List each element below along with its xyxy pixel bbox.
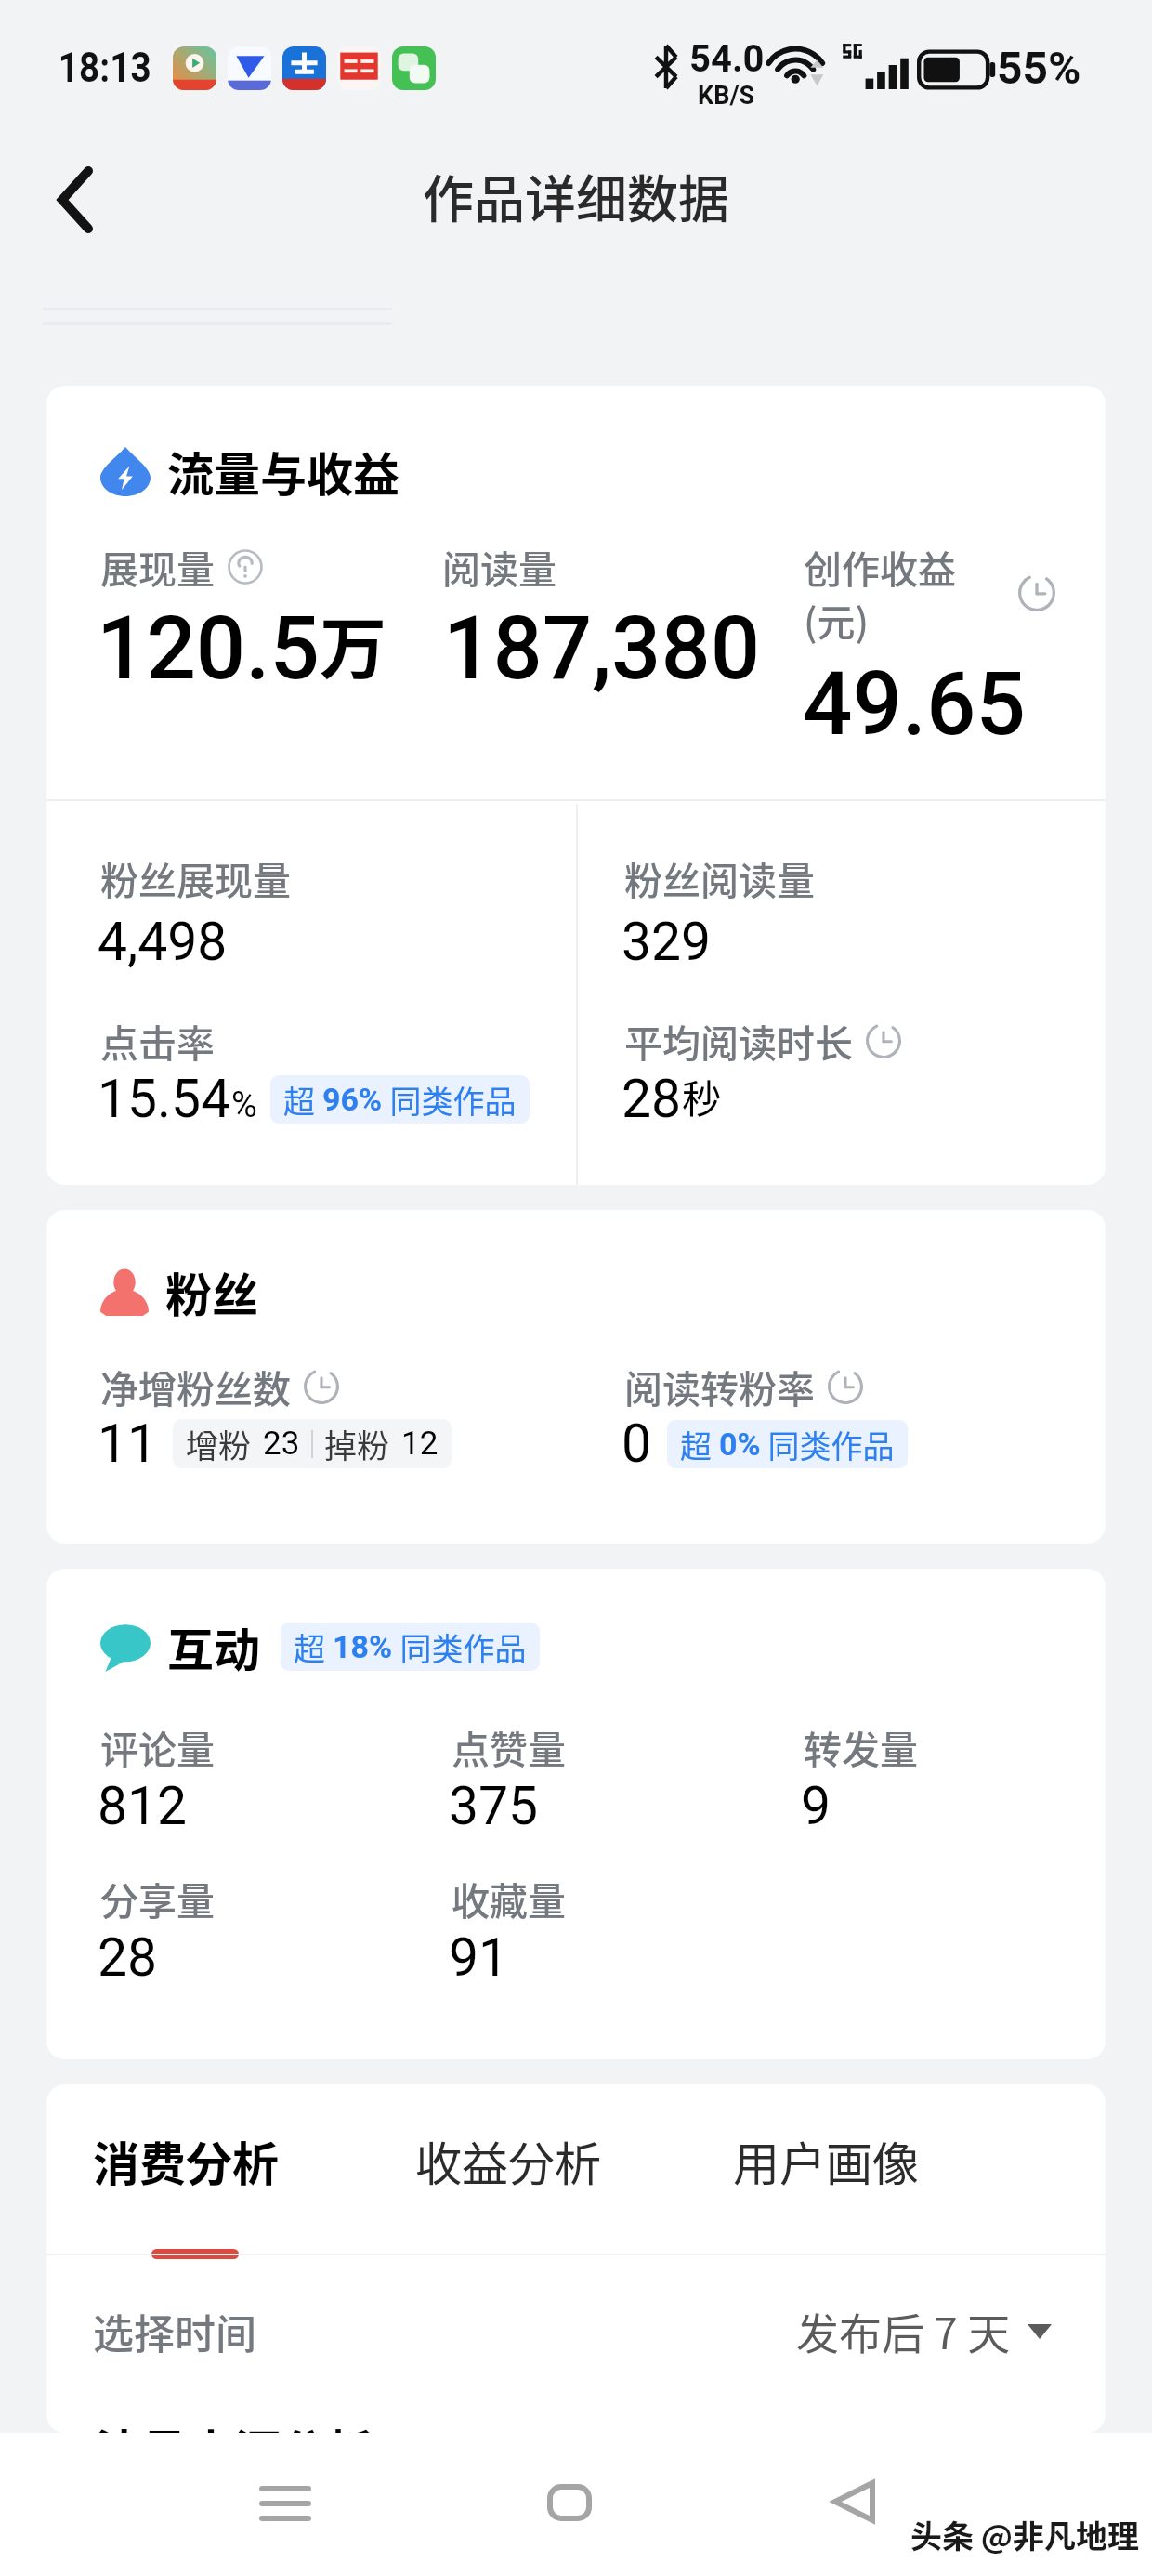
staticText: 12 xyxy=(401,1425,439,1463)
staticText: 23 xyxy=(263,1425,300,1463)
staticText: 分享量 xyxy=(100,1871,215,1925)
staticText: 粉丝阅读量 xyxy=(624,850,815,905)
staticText: 粉丝展现量 xyxy=(100,850,291,905)
staticText: % xyxy=(231,1084,257,1126)
staticText: 同类作品 xyxy=(761,1422,895,1467)
staticText: 28 xyxy=(622,1068,682,1130)
staticText: 用户画像 xyxy=(733,2127,919,2194)
button[interactable]: 消费分析 xyxy=(93,2127,279,2194)
staticText: 万 xyxy=(320,595,387,691)
button[interactable]: Recent apps xyxy=(234,2452,336,2555)
staticText: 增粉 xyxy=(186,1420,252,1467)
staticText: 头条 @非凡地理 xyxy=(910,2512,1139,2557)
staticText: 375 xyxy=(449,1775,539,1837)
staticText: 91 xyxy=(449,1926,509,1989)
staticText: 55% xyxy=(997,42,1081,94)
staticText: 0% xyxy=(719,1426,761,1463)
staticText: 展现量 xyxy=(100,539,215,594)
staticText: 18:13 xyxy=(58,44,152,92)
staticText: 掉粉 xyxy=(324,1420,390,1467)
staticText: 粉丝 xyxy=(165,1258,258,1325)
staticText: 0 xyxy=(622,1413,652,1475)
staticText: 812 xyxy=(98,1775,188,1837)
staticText: 54.0 xyxy=(689,37,765,81)
staticText: 超 xyxy=(283,1077,322,1123)
staticText: 收益分析 xyxy=(415,2127,601,2194)
staticText: 4,498 xyxy=(98,911,228,973)
staticText: 流量来源分析 xyxy=(95,2415,373,2433)
staticText: 发布后 7 天 xyxy=(796,2300,1011,2362)
button[interactable]: Back xyxy=(803,2451,905,2553)
button[interactable]: Back xyxy=(24,149,126,251)
staticText: 11 xyxy=(98,1413,158,1475)
staticText: 创作收益 (元) xyxy=(804,539,956,648)
button[interactable]: 收益分析 xyxy=(415,2127,601,2194)
staticText: 同类作品 xyxy=(383,1077,517,1123)
staticText: KB/S xyxy=(698,81,755,111)
staticText: 9 xyxy=(801,1775,831,1837)
button[interactable]: Home xyxy=(518,2451,621,2554)
staticText: 329 xyxy=(622,911,712,973)
staticText: 28 xyxy=(98,1926,158,1989)
staticText: 同类作品 xyxy=(393,1624,527,1670)
staticText: 点击率 xyxy=(100,1013,215,1068)
staticText: 18% xyxy=(333,1628,393,1665)
staticText: 点赞量 xyxy=(452,1719,566,1774)
staticText: 流量与收益 xyxy=(167,438,399,505)
staticText: 阅读转粉率 xyxy=(624,1359,815,1413)
staticText: 15.54 xyxy=(98,1068,231,1130)
staticText: 净增粉丝数 xyxy=(100,1359,291,1413)
staticText: 平均阅读时长 xyxy=(624,1013,853,1068)
staticText: 转发量 xyxy=(804,1719,918,1774)
staticText: 选择时间 xyxy=(93,2302,256,2361)
staticText: 49.65 xyxy=(803,653,1026,756)
staticText: 超 xyxy=(294,1624,333,1670)
staticText: 阅读量 xyxy=(442,539,556,594)
staticText: 收藏量 xyxy=(452,1871,566,1925)
staticText: 187,380 xyxy=(443,598,761,700)
staticText: 96% xyxy=(322,1081,383,1118)
staticText: 超 xyxy=(680,1422,719,1467)
staticText: 评论量 xyxy=(100,1719,215,1774)
button[interactable]: 用户画像 xyxy=(733,2127,919,2194)
staticText: 120.5 xyxy=(97,598,320,700)
staticText: 秒 xyxy=(682,1068,722,1124)
staticText: 互动 xyxy=(167,1613,260,1680)
staticText: 消费分析 xyxy=(93,2127,279,2194)
staticText: 作品详细数据 xyxy=(423,158,730,232)
